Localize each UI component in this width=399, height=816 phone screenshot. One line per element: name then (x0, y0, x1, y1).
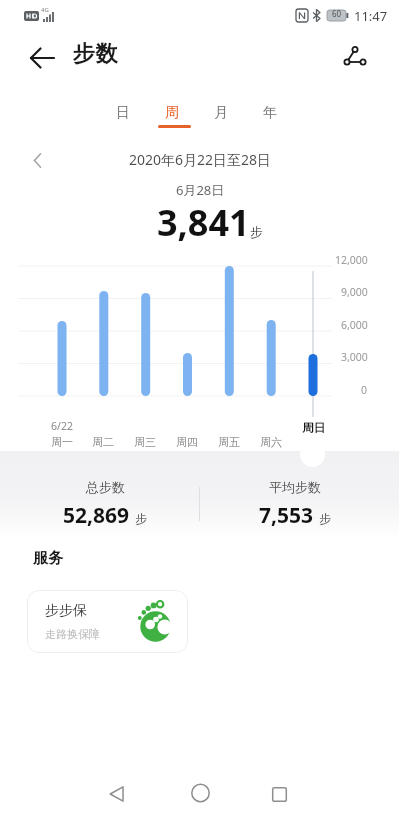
staticText: 0 (361, 383, 368, 397)
staticText: 2020年6月22日至28日 (129, 150, 272, 169)
staticText: 周二 (92, 435, 114, 449)
staticText: 总步数 (86, 479, 125, 495)
button[interactable] (22, 146, 52, 174)
staticText: 4G (41, 6, 49, 14)
button[interactable] (22, 40, 62, 76)
staticText: 60 (332, 8, 342, 19)
button[interactable] (95, 778, 137, 810)
button[interactable] (300, 442, 325, 467)
staticText: 周五 (218, 435, 240, 449)
staticText: 步 (319, 511, 331, 526)
staticText: 周六 (260, 435, 282, 449)
staticText: 步 (250, 224, 263, 240)
button[interactable]: 月 (196, 98, 245, 128)
staticText: 步数 (72, 40, 118, 68)
staticText: 周一 (51, 435, 73, 449)
button[interactable]: 步步保 (27, 590, 188, 653)
staticText: 6,000 (341, 318, 368, 332)
button[interactable]: 年 (245, 98, 294, 128)
staticText: 年 (263, 104, 277, 122)
staticText: 12,000 (335, 253, 368, 267)
staticText: 月 (214, 104, 228, 122)
staticText: 11:47 (354, 7, 388, 25)
staticText: 9,000 (341, 285, 368, 299)
staticText: 日 (116, 104, 130, 122)
staticText: 周四 (176, 435, 198, 449)
staticText: 6月28日 (176, 181, 225, 199)
staticText: 52,869 (63, 501, 130, 530)
staticText: 3,000 (341, 350, 368, 364)
staticText: 7,553 (259, 501, 314, 530)
button[interactable]: 日 (98, 98, 147, 128)
button[interactable] (332, 36, 378, 78)
staticText: 周三 (134, 435, 156, 449)
staticText: 步 (135, 511, 147, 526)
staticText: 服务 (33, 549, 63, 568)
staticText: 3,841 (157, 198, 250, 247)
button[interactable] (179, 778, 221, 810)
button[interactable]: 周 (147, 98, 196, 128)
staticText: 平均步数 (269, 479, 321, 495)
staticText: 周日 (302, 421, 325, 435)
staticText: 步步保 (45, 602, 87, 620)
staticText: 6/22 (51, 419, 73, 433)
staticText: 走路换保障 (45, 627, 100, 641)
button[interactable] (258, 778, 300, 810)
staticText: 周 (165, 104, 179, 122)
